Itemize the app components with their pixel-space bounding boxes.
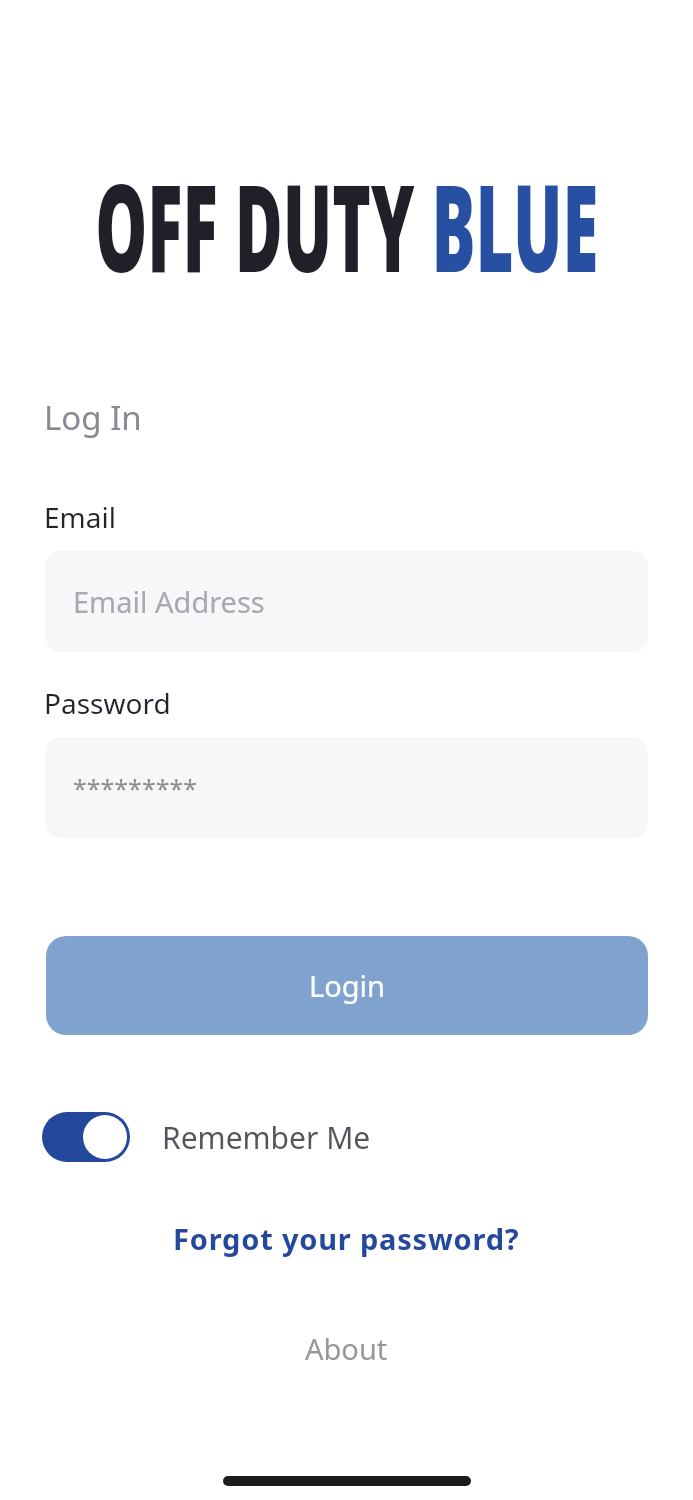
staticText: Log In: [44, 395, 142, 439]
button[interactable]: Email Address: [45, 551, 648, 652]
staticText: BLUE: [431, 144, 599, 307]
staticText: About: [305, 1329, 388, 1368]
button[interactable]: Forgot your password?: [0, 1216, 693, 1260]
button[interactable]: Login: [46, 936, 648, 1035]
staticText: Password: [44, 684, 171, 722]
button[interactable]: [42, 1112, 130, 1162]
staticText: Forgot your password?: [173, 1219, 520, 1258]
staticText: Remember Me: [162, 1117, 371, 1158]
staticText: Email Address: [73, 582, 265, 621]
staticText: Email: [44, 498, 116, 536]
staticText: *********: [73, 771, 197, 805]
staticText: OFF DUTY: [95, 144, 431, 307]
staticText: Login: [309, 966, 385, 1005]
button[interactable]: *********: [45, 737, 648, 838]
button[interactable]: About: [0, 1327, 693, 1369]
